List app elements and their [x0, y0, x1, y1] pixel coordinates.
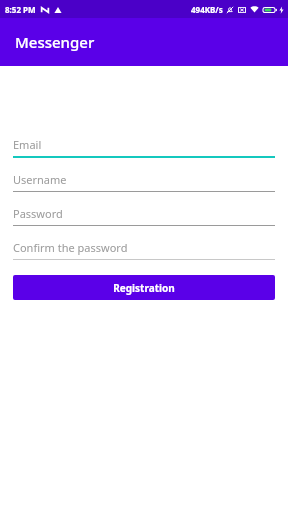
- staticText: 494KB/s: [191, 4, 223, 15]
- button[interactable]: Username: [13, 169, 275, 192]
- staticText: Username: [13, 172, 67, 187]
- staticText: 8:52 PM: [5, 4, 36, 15]
- button[interactable]: Email: [13, 134, 275, 158]
- staticText: Email: [13, 137, 42, 152]
- staticText: Messenger: [15, 32, 95, 52]
- staticText: Confirm the password: [13, 240, 128, 255]
- staticText: Registration: [113, 281, 175, 295]
- button[interactable]: Password: [13, 203, 275, 226]
- button[interactable]: Confirm the password: [13, 237, 275, 260]
- staticText: Password: [13, 206, 63, 221]
- button[interactable]: Registration: [13, 275, 275, 300]
